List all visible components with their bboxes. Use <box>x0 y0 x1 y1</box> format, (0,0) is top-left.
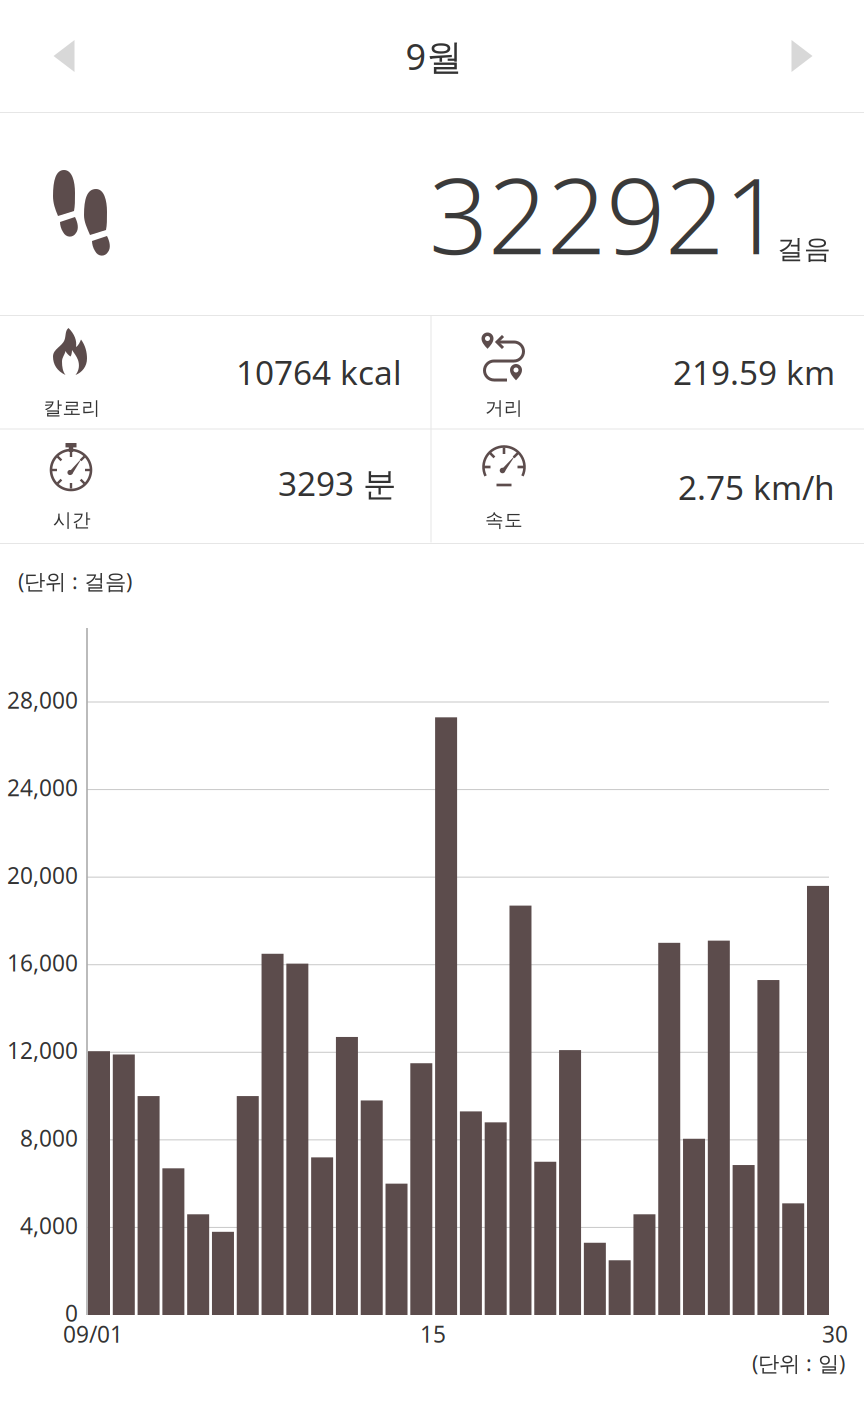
staticText: 24,000 <box>7 772 78 803</box>
staticText: 219.59 km <box>673 350 835 394</box>
staticText: 09/01 <box>63 1319 123 1349</box>
staticText: 9월 <box>405 32 462 80</box>
staticText: 322921 <box>429 145 783 283</box>
button[interactable]: Previous month <box>0 0 128 112</box>
staticText: 16,000 <box>7 948 78 978</box>
staticText: 칼로리 <box>43 396 100 419</box>
staticText: 2.75 km/h <box>678 465 835 509</box>
staticText: 속도 <box>485 508 523 531</box>
staticText: 8,000 <box>20 1123 78 1153</box>
staticText: 12,000 <box>7 1035 78 1065</box>
staticText: 30 <box>822 1319 848 1349</box>
staticText: 10764 kcal <box>236 350 402 394</box>
staticText: 20,000 <box>7 860 78 890</box>
staticText: (단위 : 걸음) <box>18 567 132 595</box>
staticText: 3293 분 <box>278 461 396 505</box>
staticText: 걸음 <box>777 233 831 265</box>
staticText: 28,000 <box>7 685 78 715</box>
staticText: (단위 : 일) <box>752 1349 845 1377</box>
staticText: 0 <box>65 1298 78 1328</box>
staticText: 시간 <box>53 508 91 531</box>
button[interactable]: Next month <box>740 0 864 112</box>
staticText: 거리 <box>485 396 523 419</box>
staticText: 15 <box>420 1319 446 1349</box>
staticText: 4,000 <box>20 1210 78 1240</box>
